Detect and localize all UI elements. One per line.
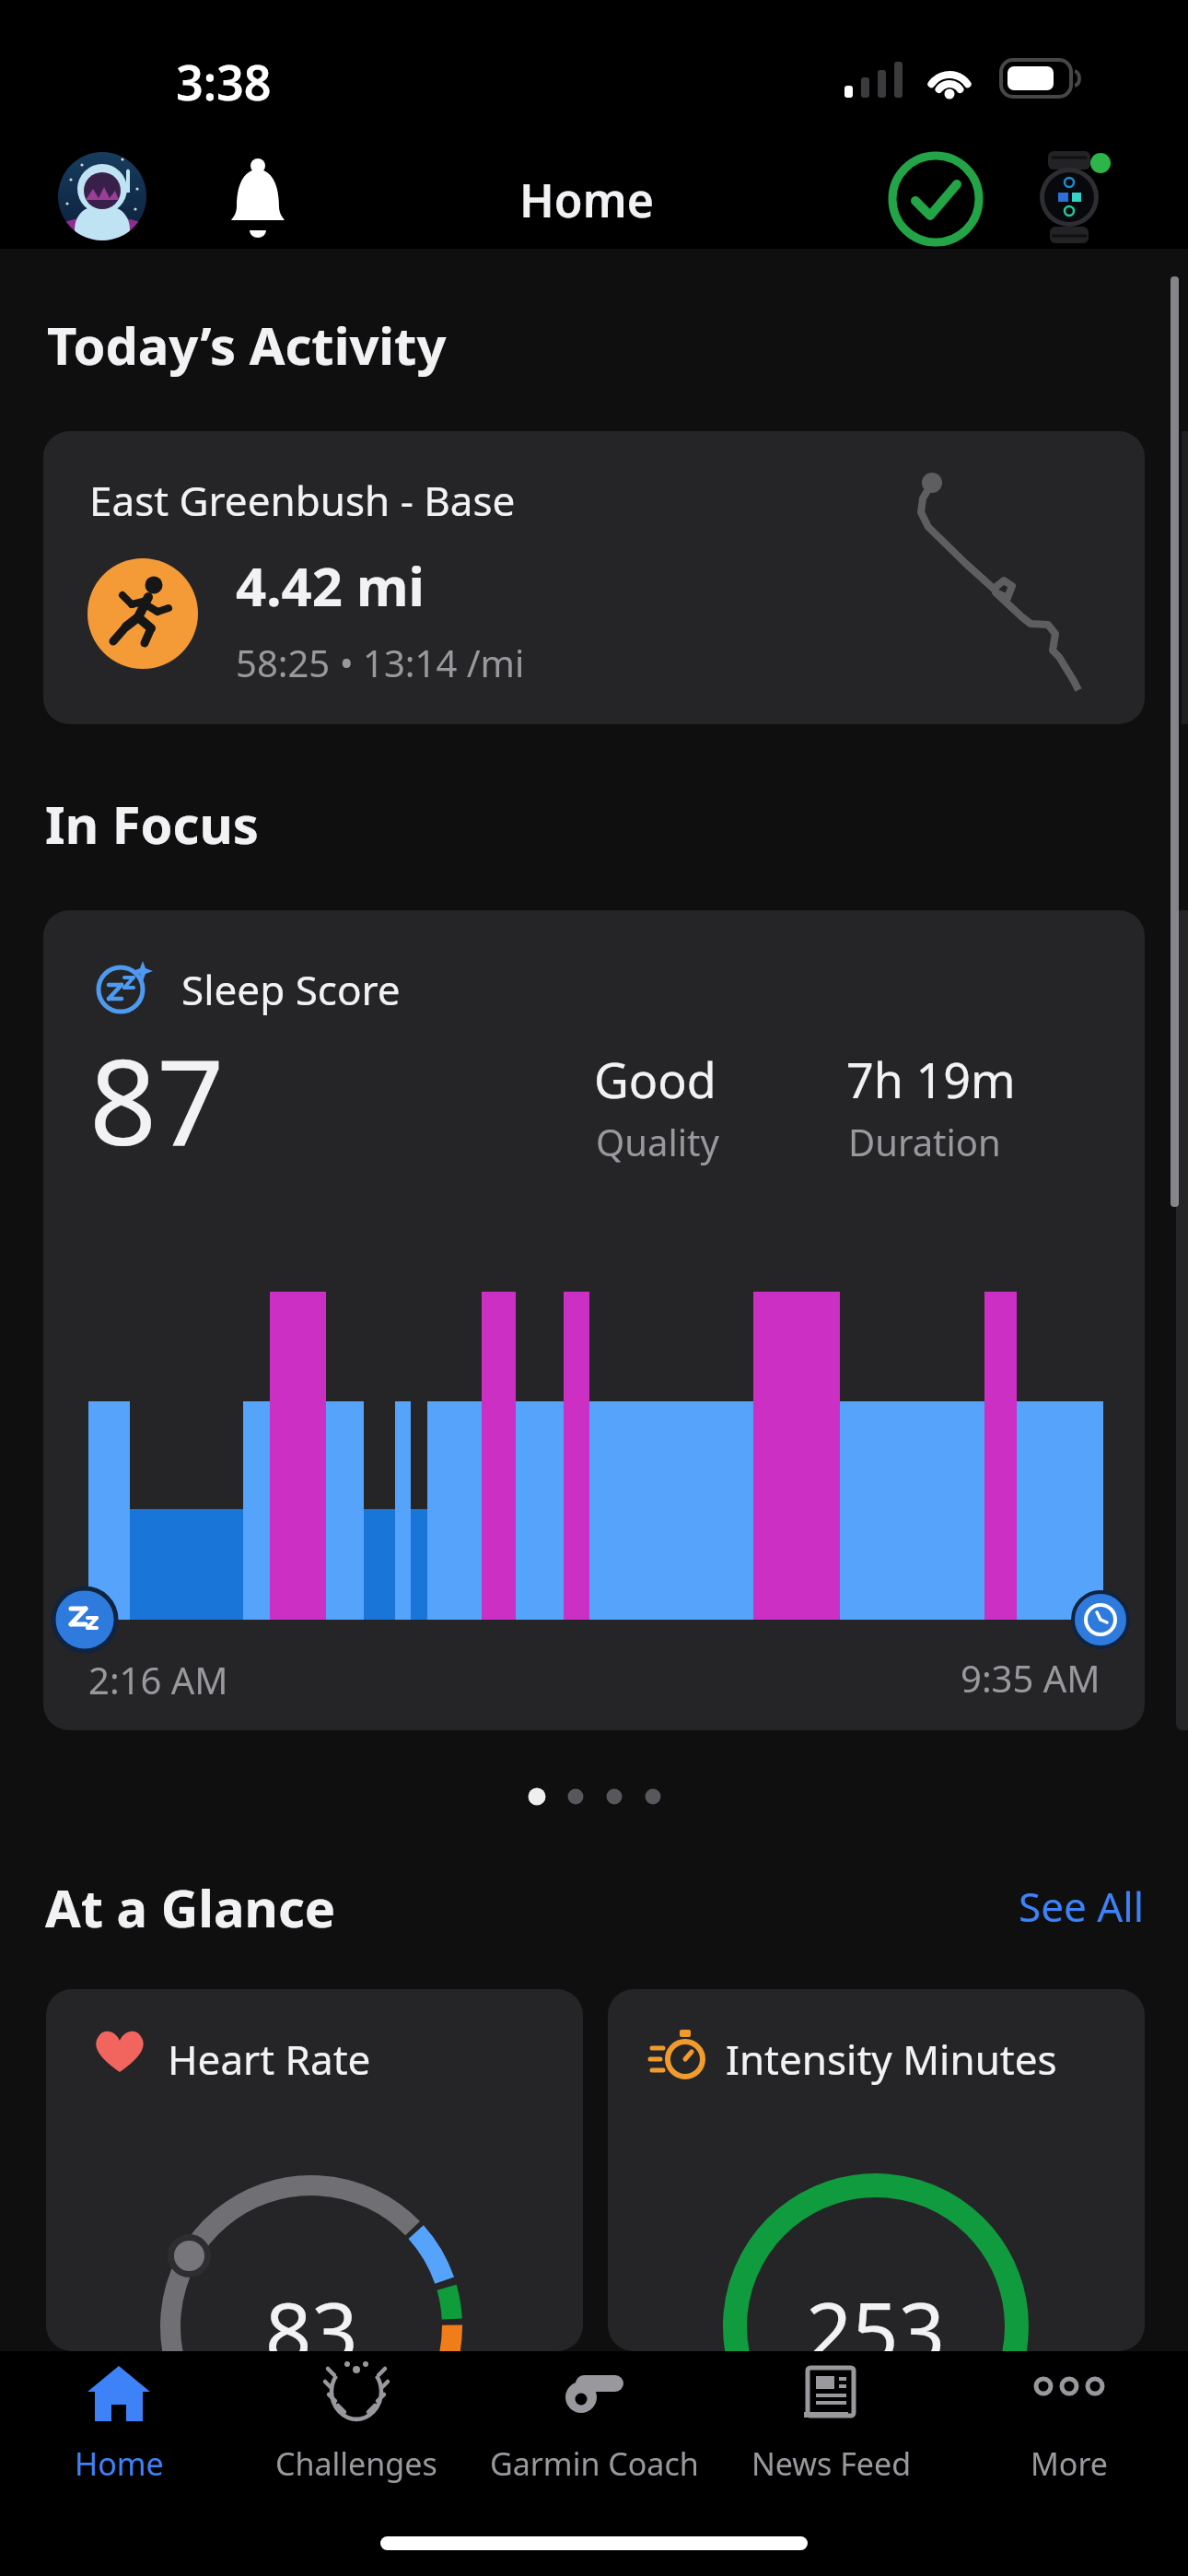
button[interactable]: Heart Rate: [46, 1989, 583, 2351]
button[interactable]: [227, 158, 288, 238]
button[interactable]: [1037, 151, 1111, 243]
button[interactable]: Garmin Coach: [475, 2351, 713, 2517]
staticText: Good: [594, 1047, 716, 1112]
staticText: Challenges: [275, 2442, 437, 2485]
staticText: Sleep Score: [181, 962, 401, 1017]
staticText: 253: [806, 2275, 946, 2351]
staticText: 4.42 mi: [236, 549, 425, 622]
button[interactable]: Home: [0, 2351, 238, 2517]
staticText: News Feed: [751, 2442, 912, 2485]
staticText: 9:35 AM: [961, 1653, 1101, 1699]
staticText: 58:25 • 13:14 /mi: [236, 638, 525, 687]
staticText: Home: [519, 169, 654, 231]
staticText: See All: [1019, 1879, 1145, 1934]
button[interactable]: More: [950, 2351, 1188, 2517]
staticText: Heart Rate: [168, 2032, 371, 2087]
staticText: East Greenbush - Base: [89, 473, 516, 528]
staticText: Intensity Minutes: [726, 2032, 1057, 2087]
staticText: In Focus: [45, 789, 259, 859]
staticText: Duration: [848, 1117, 1001, 1166]
button[interactable]: See All: [958, 1876, 1145, 1937]
staticText: Today’s Activity: [47, 310, 447, 380]
button[interactable]: Intensity Minutes: [608, 1989, 1145, 2351]
staticText: Quality: [596, 1117, 719, 1166]
button[interactable]: East Greenbush - Base: [43, 431, 1145, 724]
staticText: 87: [89, 1019, 225, 1179]
button[interactable]: Sleep Score: [43, 910, 1145, 1730]
staticText: Garmin Coach: [490, 2442, 699, 2485]
button[interactable]: Challenges: [238, 2351, 475, 2517]
button[interactable]: News Feed: [713, 2351, 950, 2517]
staticText: Home: [75, 2442, 164, 2485]
button[interactable]: [58, 152, 146, 240]
staticText: More: [1031, 2442, 1108, 2485]
staticText: At a Glance: [45, 1872, 336, 1942]
staticText: 2:16 AM: [88, 1655, 228, 1704]
staticText: 83: [265, 2275, 358, 2351]
button[interactable]: [887, 150, 984, 248]
staticText: 7h 19m: [846, 1047, 1016, 1112]
staticText: 3:38: [176, 49, 272, 114]
